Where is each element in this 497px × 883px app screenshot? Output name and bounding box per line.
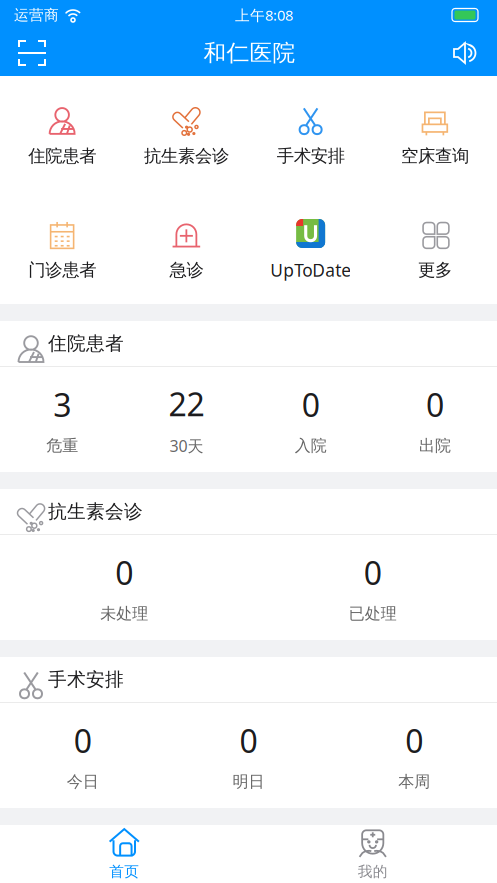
staticText: 危重: [46, 436, 78, 456]
button[interactable]: 空床查询: [373, 99, 497, 167]
staticText: 0: [239, 719, 257, 762]
staticText: 0: [302, 383, 320, 426]
staticText: 3: [53, 383, 71, 426]
button[interactable]: 住院患者: [0, 99, 124, 167]
staticText: 空床查询: [401, 145, 469, 167]
staticText: 运营商: [14, 6, 59, 24]
staticText: 急诊: [169, 259, 203, 281]
staticText: 住院患者: [28, 145, 96, 167]
staticText: 0: [364, 551, 382, 594]
staticText: 22: [168, 383, 204, 425]
staticText: 手术安排: [277, 145, 345, 167]
staticText: 我的: [358, 862, 388, 880]
staticText: 30天: [169, 435, 203, 456]
staticText: 入院: [295, 436, 327, 456]
staticText: 更多: [418, 259, 452, 281]
staticText: 住院患者: [48, 332, 124, 355]
staticText: 明日: [232, 772, 264, 792]
staticText: 0: [405, 719, 423, 762]
staticText: 上午8:08: [235, 5, 293, 25]
staticText: 和仁医院: [203, 39, 295, 67]
staticText: 今日: [67, 772, 99, 792]
button[interactable]: 门诊患者: [0, 213, 124, 281]
staticText: 本周: [398, 772, 430, 792]
button[interactable]: 通知: [443, 31, 489, 75]
staticText: 0: [426, 383, 444, 426]
button[interactable]: 更多: [373, 213, 497, 281]
staticText: 门诊患者: [28, 259, 96, 281]
staticText: 0: [115, 551, 133, 594]
button[interactable]: 我的: [248, 827, 497, 880]
staticText: 抗生素会诊: [48, 500, 143, 523]
staticText: 手术安排: [48, 668, 124, 691]
staticText: 抗生素会诊: [144, 145, 229, 167]
staticText: 已处理: [349, 604, 397, 624]
button[interactable]: 首页: [0, 827, 248, 880]
staticText: 0: [74, 719, 92, 762]
button[interactable]: 抗生素会诊: [124, 99, 248, 167]
button[interactable]: 急诊: [124, 213, 248, 281]
staticText: 首页: [109, 862, 139, 880]
button[interactable]: 手术安排: [248, 99, 373, 167]
staticText: 未处理: [100, 604, 148, 624]
button[interactable]: UpToDate: [248, 212, 373, 281]
staticText: 出院: [419, 436, 451, 456]
staticText: UpToDate: [270, 258, 351, 281]
button[interactable]: 扫一扫: [8, 29, 56, 77]
